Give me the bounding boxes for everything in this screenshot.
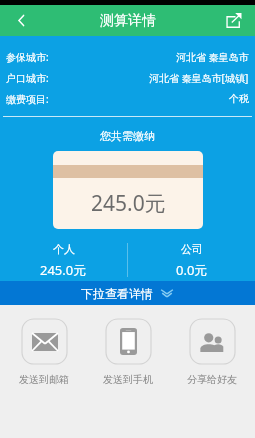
staticText: 个税	[229, 92, 249, 105]
button[interactable]: 发送到手机	[96, 319, 160, 386]
staticText: 您共需缴纳	[0, 129, 255, 143]
staticText: 个人	[53, 242, 75, 256]
staticText: 发送到手机	[103, 373, 153, 386]
staticText: 户口城市:	[6, 71, 49, 85]
staticText: 245.0元	[40, 261, 87, 279]
button[interactable]: 发送到邮箱	[12, 319, 76, 386]
button[interactable]: 分享给好友	[180, 319, 244, 386]
staticText: 参保城市:	[6, 50, 49, 64]
staticText: 公司	[181, 242, 203, 256]
button[interactable]: 下拉查看详情	[0, 281, 255, 305]
staticText: 测算详情	[100, 12, 156, 30]
staticText: 分享给好友	[187, 373, 237, 386]
staticText: 下拉查看详情	[81, 286, 153, 301]
staticText: 缴费项目:	[6, 92, 49, 106]
staticText: 发送到邮箱	[19, 373, 69, 386]
staticText: 245.0元	[91, 189, 166, 218]
staticText: 河北省 秦皇岛市	[176, 50, 249, 64]
button[interactable]: Share	[211, 5, 255, 36]
button[interactable]: Back	[0, 5, 42, 36]
staticText: 0.0元	[176, 261, 208, 279]
staticText: 河北省 秦皇岛市[城镇]	[149, 71, 249, 85]
